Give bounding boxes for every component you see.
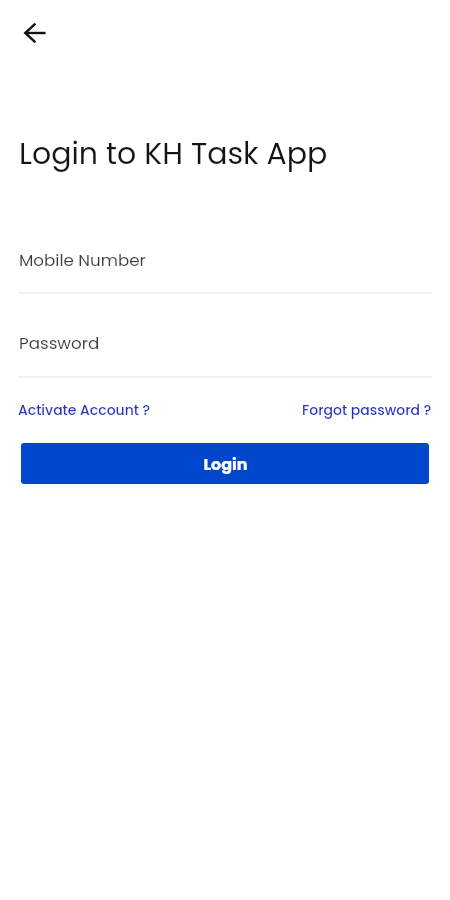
button[interactable]: Navigate back <box>13 11 56 54</box>
button[interactable] <box>18 242 432 294</box>
staticText: Login to KH Task App <box>19 133 328 175</box>
staticText: Password <box>19 331 100 354</box>
staticText: Login <box>203 453 248 475</box>
button[interactable]: Activate Account ? <box>18 400 151 420</box>
button[interactable]: Login <box>21 443 429 484</box>
button[interactable]: Forgot password ? <box>302 400 432 420</box>
button[interactable] <box>18 325 432 378</box>
staticText: Mobile Number <box>19 248 146 271</box>
